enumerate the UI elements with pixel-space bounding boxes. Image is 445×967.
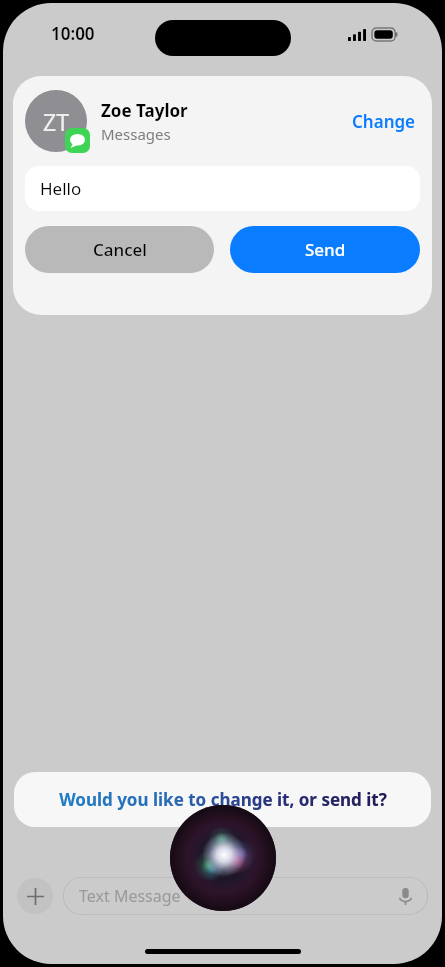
staticText: Text Message: [79, 885, 181, 907]
staticText: Cancel: [93, 238, 147, 261]
button[interactable]: Add attachment: [17, 878, 53, 914]
button[interactable]: Change: [348, 104, 420, 139]
button[interactable]: Cancel: [25, 226, 214, 273]
staticText: Would you like to change it, or send it?: [59, 788, 387, 811]
button[interactable]: Hello: [25, 166, 420, 211]
button[interactable]: Siri: [170, 805, 276, 911]
staticText: Change: [352, 110, 416, 133]
button[interactable]: Dictate: [392, 883, 418, 909]
staticText: Zoe Taylor: [101, 99, 188, 122]
staticText: Send: [305, 238, 346, 261]
staticText: 10:00: [51, 22, 95, 45]
button[interactable]: Send: [230, 226, 420, 273]
button[interactable]: Text Message: [63, 877, 428, 915]
staticText: Messages: [101, 124, 171, 144]
staticText: ZT: [43, 106, 69, 137]
staticText: Hello: [40, 177, 82, 200]
